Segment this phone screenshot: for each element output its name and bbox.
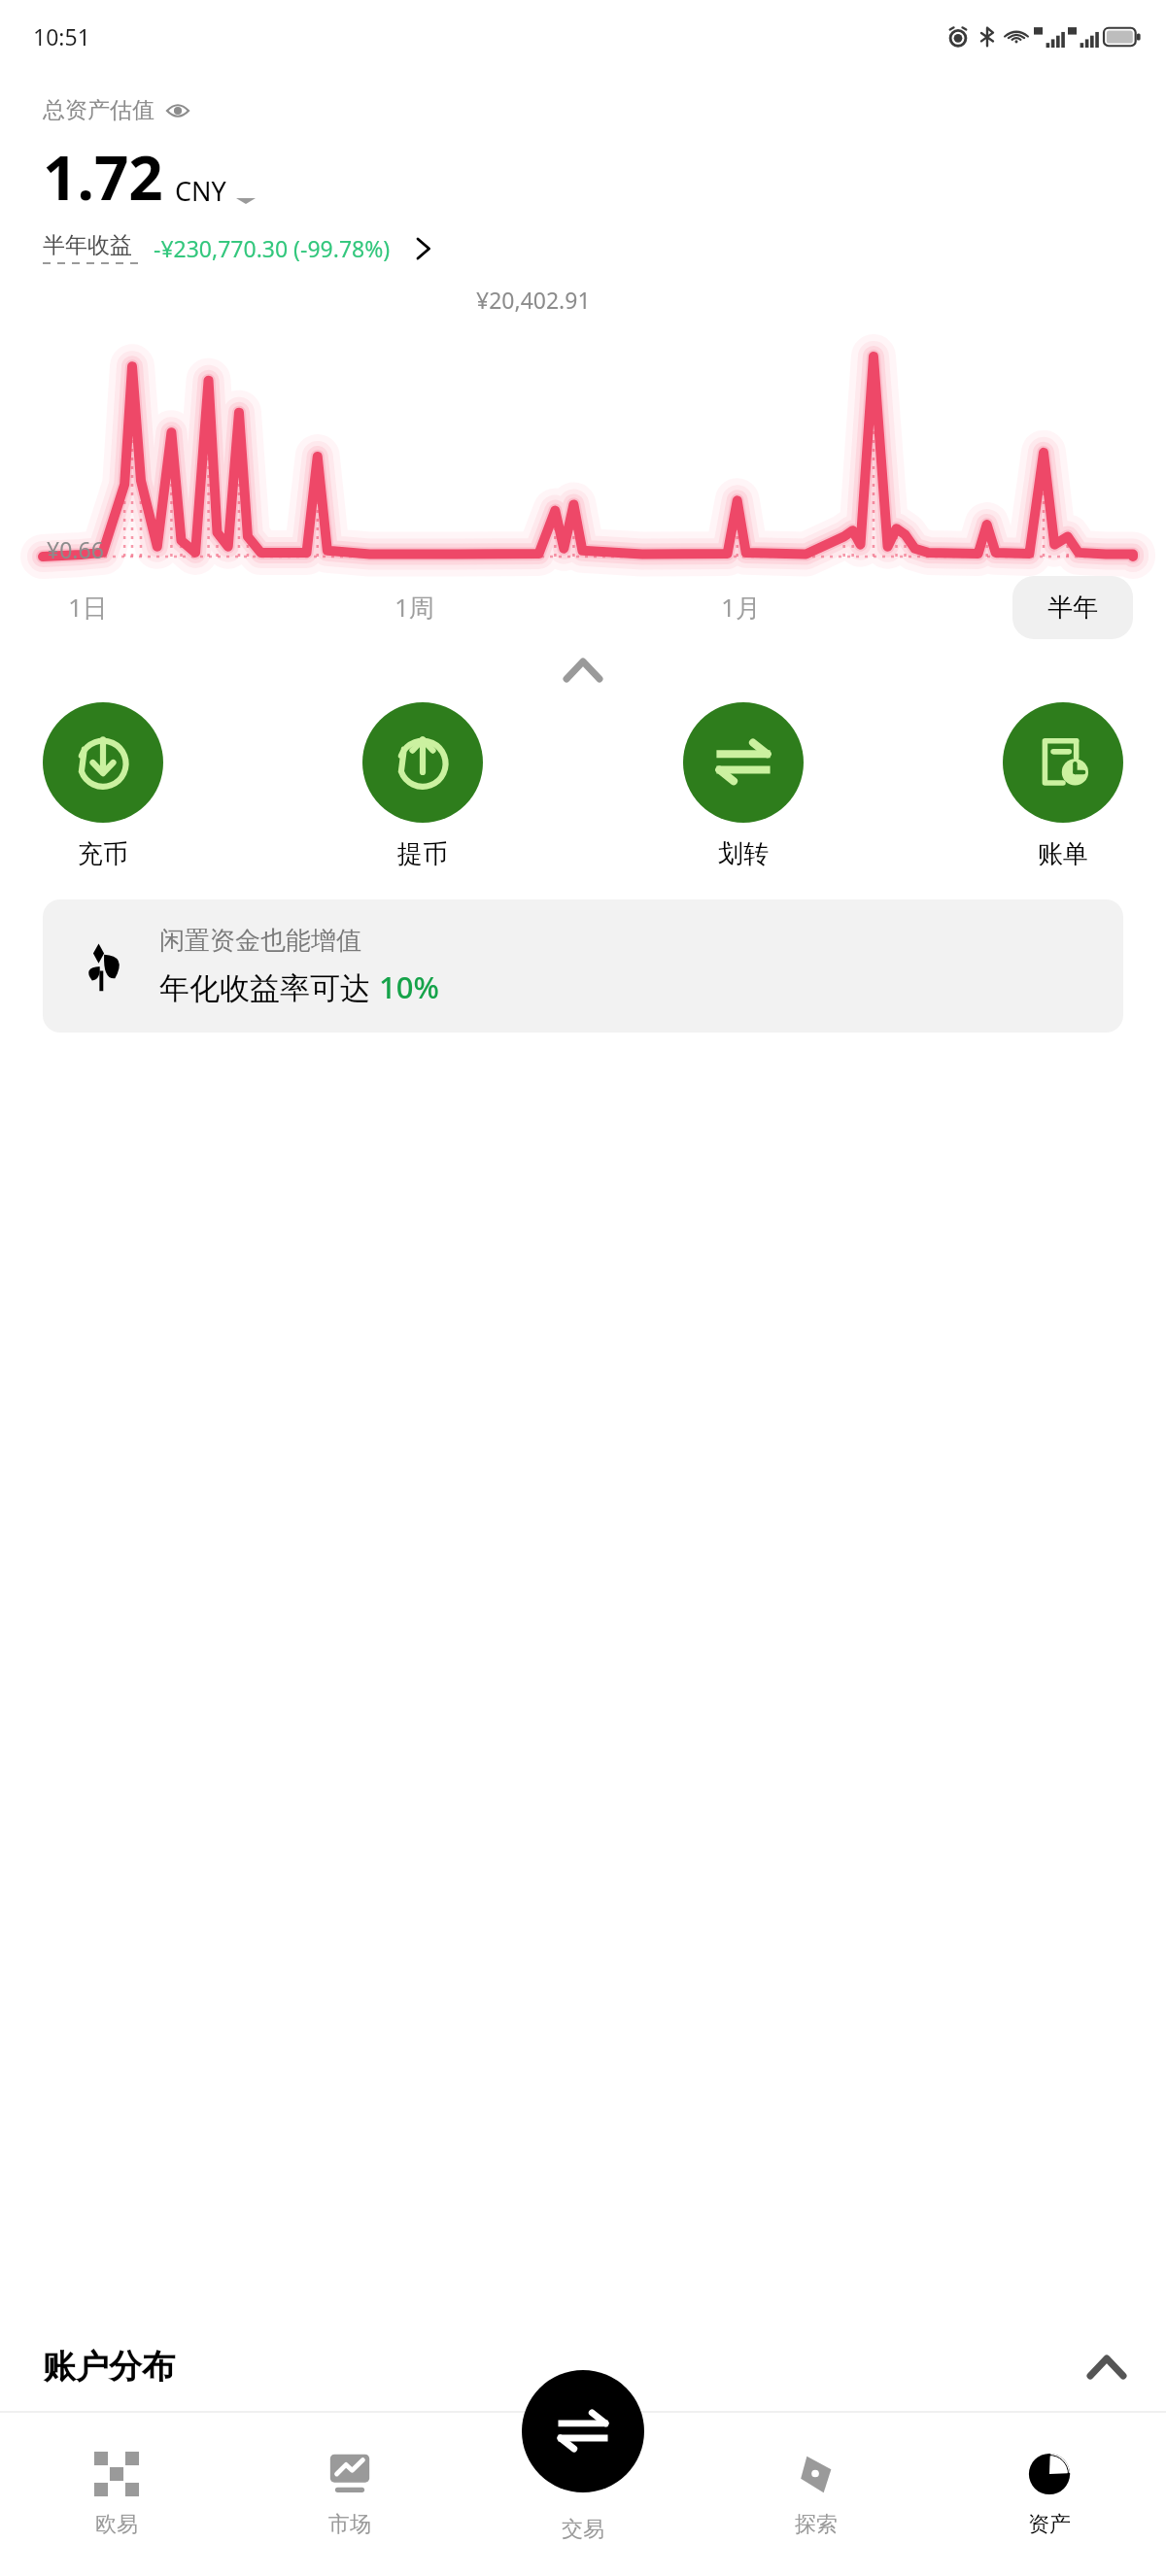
staticText: 探索 xyxy=(795,2511,838,2538)
staticText: 1周 xyxy=(394,590,434,625)
button[interactable]: 闲置资金也能增值 xyxy=(43,899,1123,1033)
staticText: 账户分布 xyxy=(43,2346,175,2388)
staticText: 年化收益率可达 xyxy=(159,966,379,1007)
staticText: 10% xyxy=(379,966,439,1007)
other: Toggle visibility xyxy=(166,99,189,122)
staticText: 划转 xyxy=(718,838,769,870)
button[interactable]: 1日 xyxy=(33,574,143,640)
staticText: 欧易 xyxy=(95,2511,138,2538)
other: Details xyxy=(414,239,433,258)
button[interactable]: 充币 xyxy=(39,698,167,874)
button[interactable]: 1.72 xyxy=(43,136,256,218)
button[interactable]: 交易 Trade xyxy=(522,2370,644,2492)
button[interactable]: 1周 xyxy=(360,574,469,640)
staticText: 1.72 xyxy=(43,136,163,218)
other: Collapse section xyxy=(1090,2358,1123,2376)
staticText: 账单 xyxy=(1038,838,1088,870)
staticText: 资产 xyxy=(1028,2511,1071,2538)
staticText: 闲置资金也能增值 xyxy=(159,925,361,957)
button[interactable]: 1月 xyxy=(686,574,796,640)
button[interactable]: 总资产估值 xyxy=(43,94,189,126)
staticText: 总资产估值 xyxy=(43,96,154,124)
button[interactable]: 账户分布 xyxy=(0,2340,1166,2393)
staticText: 半年 xyxy=(1047,592,1098,624)
staticText: 1月 xyxy=(721,590,761,625)
staticText: 提币 xyxy=(397,838,448,870)
staticText: ¥0.66 xyxy=(47,534,104,564)
staticText: ¥20,402.91 xyxy=(476,285,591,315)
button[interactable]: 划转 xyxy=(679,698,807,874)
button[interactable]: 账单 xyxy=(999,698,1127,874)
button[interactable]: 半年 xyxy=(1012,576,1133,639)
staticText: CNY xyxy=(175,173,226,209)
button[interactable]: 半年收益 xyxy=(43,231,433,265)
staticText: -¥230,770.30 (-99.78%) xyxy=(154,233,391,263)
staticText: 充币 xyxy=(78,838,128,870)
button[interactable]: 欧易 xyxy=(0,2413,233,2576)
staticText: 市场 xyxy=(328,2511,371,2538)
button[interactable]: 市场 xyxy=(233,2413,466,2576)
button[interactable]: 提币 xyxy=(359,698,487,874)
staticText: 交易 xyxy=(562,2516,604,2543)
staticText: 10:51 xyxy=(33,21,90,51)
staticText: 半年收益 xyxy=(43,231,132,259)
staticText: 1日 xyxy=(68,590,108,625)
button[interactable]: 探索 xyxy=(700,2413,933,2576)
button[interactable]: 资产 xyxy=(933,2413,1166,2576)
button[interactable]: 交易 xyxy=(466,2413,700,2576)
button[interactable]: Collapse xyxy=(0,656,1166,685)
